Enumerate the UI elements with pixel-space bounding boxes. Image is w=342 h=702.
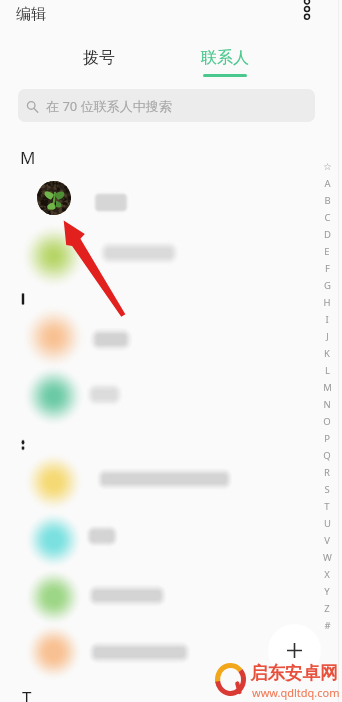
- button[interactable]: [0, 308, 342, 366]
- button[interactable]: More options: [299, 0, 315, 28]
- staticText: 在 70 位联系人中搜索: [46, 97, 172, 115]
- staticText: D: [324, 228, 331, 241]
- staticText: M: [323, 381, 332, 394]
- staticText: 启东安卓网: [250, 662, 338, 684]
- staticText: #: [324, 619, 331, 632]
- button[interactable]: [0, 511, 342, 569]
- staticText: G: [324, 279, 331, 292]
- staticText: N: [323, 398, 331, 411]
- staticText: Y: [324, 585, 330, 598]
- staticText: B: [324, 194, 331, 207]
- button[interactable]: Add contact: [268, 624, 321, 677]
- button[interactable]: [0, 169, 342, 227]
- button[interactable]: [0, 227, 342, 285]
- staticText: I: [325, 313, 329, 326]
- staticText: H: [323, 296, 331, 309]
- button[interactable]: 编辑: [16, 5, 46, 24]
- staticText: ☆: [323, 161, 332, 172]
- staticText: 联系人: [201, 48, 249, 68]
- staticText: A: [324, 177, 331, 190]
- staticText: C: [324, 211, 331, 224]
- button[interactable]: ☆: [318, 158, 336, 634]
- staticText: W: [323, 551, 332, 564]
- button[interactable]: 拨号: [54, 48, 144, 78]
- staticText: P: [324, 432, 330, 445]
- staticText: X: [324, 568, 330, 581]
- staticText: E: [324, 245, 330, 258]
- staticText: Q: [323, 449, 331, 462]
- staticText: V: [324, 534, 330, 547]
- staticText: K: [324, 347, 330, 360]
- staticText: O: [323, 415, 331, 428]
- staticText: T: [22, 686, 32, 702]
- staticText: R: [324, 466, 330, 479]
- staticText: U: [324, 517, 331, 530]
- button[interactable]: [0, 453, 342, 511]
- staticText: www.qdltdq.com: [252, 685, 340, 700]
- staticText: L: [325, 364, 330, 377]
- button[interactable]: 在 70 位联系人中搜索: [18, 89, 315, 122]
- button[interactable]: [0, 367, 342, 425]
- button[interactable]: 联系人: [180, 48, 270, 82]
- staticText: M: [20, 146, 36, 168]
- staticText: T: [324, 500, 330, 513]
- staticText: 编辑: [16, 5, 46, 24]
- button[interactable]: [0, 568, 342, 626]
- staticText: F: [325, 262, 330, 275]
- staticText: 拨号: [83, 48, 115, 68]
- button[interactable]: [0, 623, 342, 681]
- staticText: J: [326, 330, 329, 343]
- staticText: S: [324, 483, 330, 496]
- staticText: Z: [324, 602, 330, 615]
